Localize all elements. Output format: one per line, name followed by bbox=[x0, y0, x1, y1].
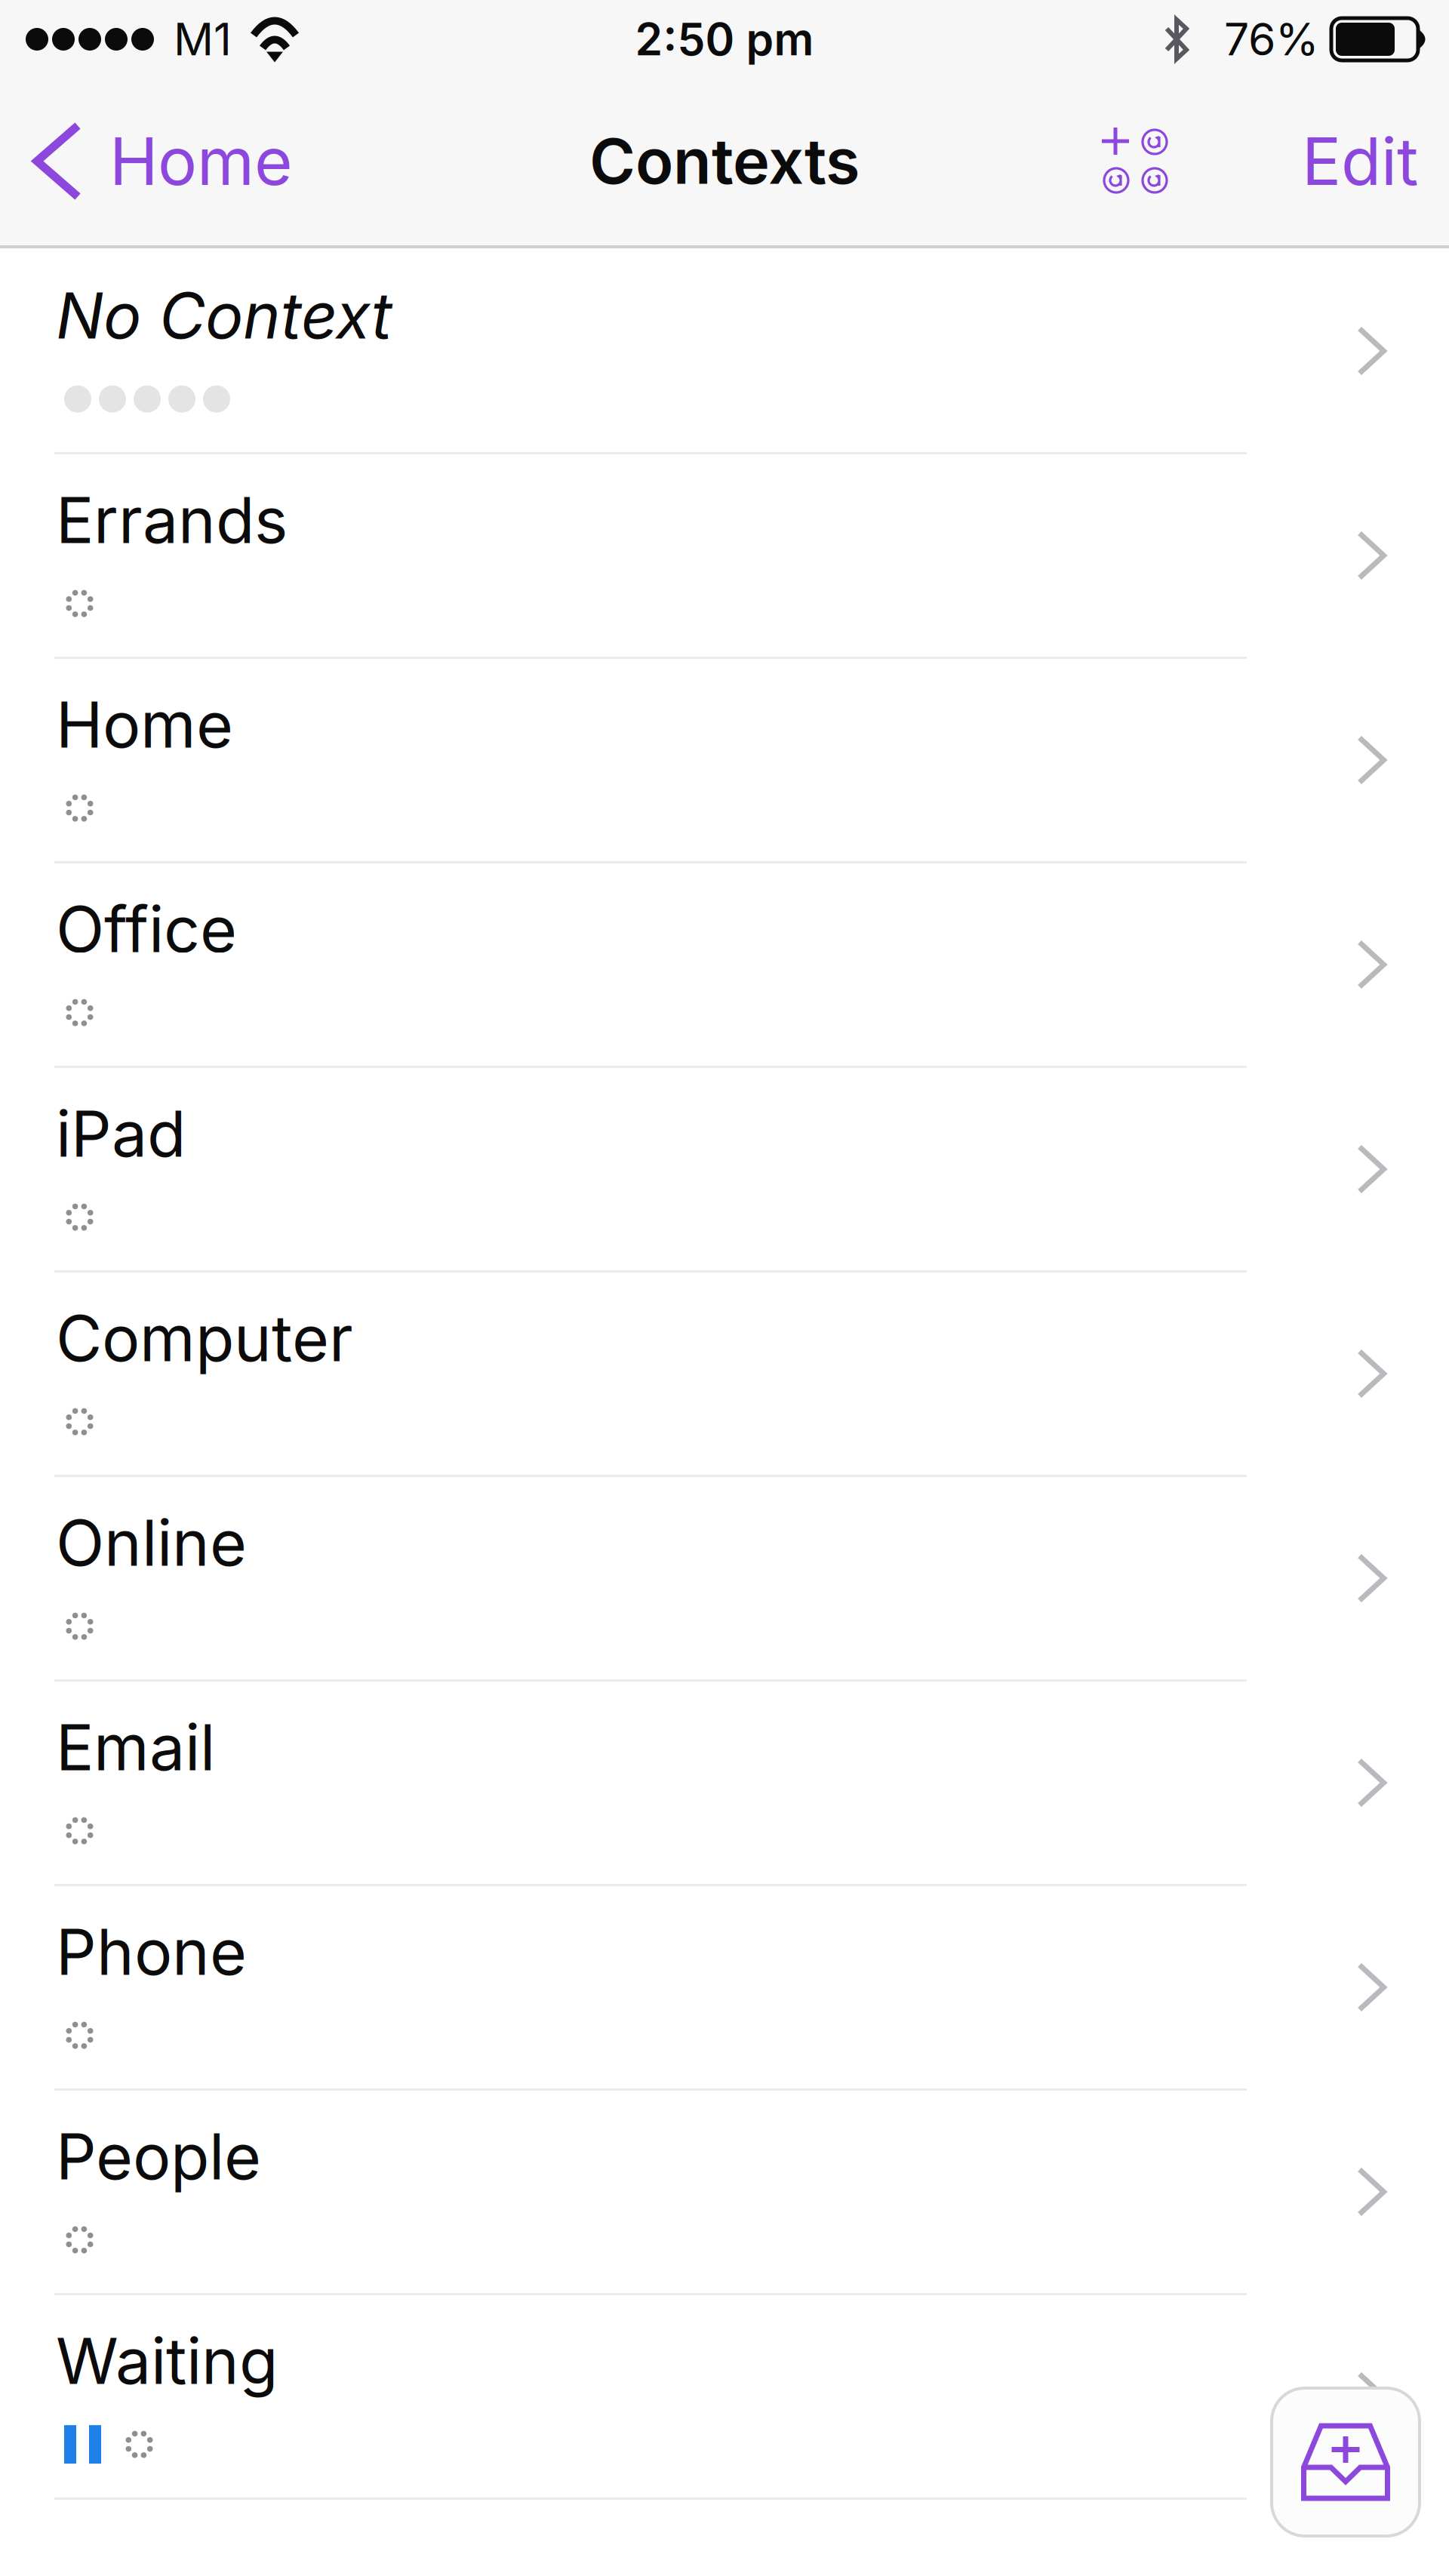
staticText: iPad bbox=[56, 1095, 186, 1172]
button[interactable]: Errands bbox=[0, 454, 1449, 657]
staticText: Contexts bbox=[589, 123, 860, 199]
button[interactable]: Home bbox=[0, 91, 315, 232]
staticText: No Context bbox=[56, 277, 392, 354]
button[interactable]: Home bbox=[0, 659, 1449, 861]
staticText: Edit bbox=[1302, 122, 1418, 201]
button[interactable]: New context bbox=[1038, 91, 1232, 232]
button[interactable]: Phone bbox=[0, 1886, 1449, 2088]
staticText: 76% bbox=[1224, 12, 1319, 66]
button[interactable]: Online bbox=[0, 1477, 1449, 1679]
button[interactable]: Edit bbox=[1279, 91, 1449, 232]
staticText: Phone bbox=[56, 1913, 247, 1990]
button[interactable]: Waiting bbox=[0, 2295, 1449, 2498]
staticText: Errands bbox=[56, 482, 288, 558]
button[interactable]: No Context bbox=[0, 250, 1449, 452]
staticText: Email bbox=[56, 1709, 215, 1785]
staticText: Online bbox=[56, 1504, 247, 1581]
staticText: People bbox=[56, 2118, 261, 2195]
button[interactable]: Computer bbox=[0, 1273, 1449, 1475]
button[interactable]: Email bbox=[0, 1682, 1449, 1884]
button[interactable]: iPad bbox=[0, 1068, 1449, 1270]
staticText: Computer bbox=[56, 1300, 353, 1376]
staticText: 2:50 pm bbox=[635, 12, 814, 66]
button[interactable]: People bbox=[0, 2091, 1449, 2293]
button[interactable]: Add to inbox bbox=[1272, 2388, 1420, 2536]
staticText: Home bbox=[109, 122, 293, 201]
staticText: Waiting bbox=[56, 2322, 278, 2399]
button[interactable]: Office bbox=[0, 863, 1449, 1066]
staticText: Office bbox=[56, 891, 237, 967]
staticText: Home bbox=[56, 686, 233, 763]
staticText: M1 bbox=[174, 12, 232, 66]
